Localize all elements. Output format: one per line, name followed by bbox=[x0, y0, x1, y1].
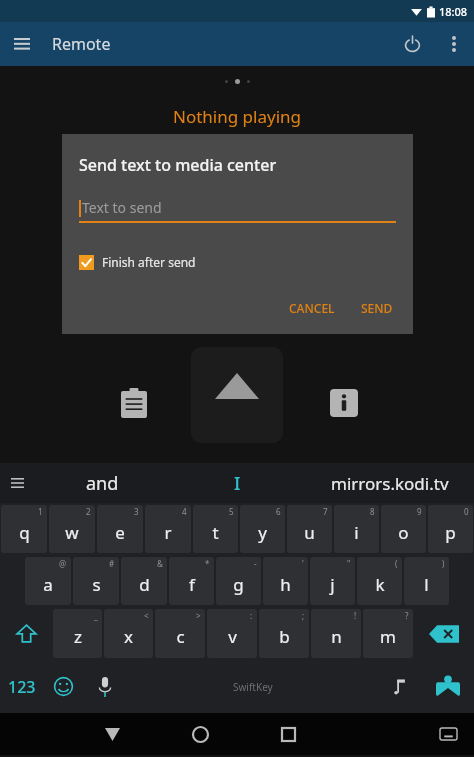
button[interactable]: Power bbox=[390, 22, 434, 66]
staticText: a bbox=[43, 573, 53, 596]
button[interactable]: I bbox=[170, 463, 305, 503]
button[interactable]: Switch keyboard bbox=[426, 713, 470, 755]
staticText: 0 bbox=[464, 506, 469, 517]
staticText: 2 bbox=[86, 506, 91, 517]
staticText: * bbox=[205, 558, 210, 569]
staticText: ) bbox=[442, 558, 445, 569]
button[interactable]: Keyboard settings bbox=[0, 463, 34, 503]
staticText: : bbox=[250, 610, 253, 621]
button[interactable]: More options bbox=[434, 24, 474, 64]
button[interactable]: Up bbox=[191, 347, 283, 443]
button[interactable]: SEND bbox=[351, 294, 403, 322]
staticText: Finish after send bbox=[102, 254, 196, 270]
button[interactable]: ' bbox=[263, 557, 308, 605]
staticText: and bbox=[86, 471, 119, 496]
button[interactable]: Playlist bbox=[108, 377, 160, 429]
staticText: 5 bbox=[229, 506, 234, 517]
staticText: 123 bbox=[8, 676, 36, 698]
button[interactable]: - bbox=[216, 557, 261, 605]
button[interactable]: * bbox=[169, 557, 214, 605]
button[interactable]: 0 bbox=[428, 505, 473, 553]
button[interactable]: < bbox=[104, 609, 153, 658]
button[interactable]: 1 bbox=[1, 505, 47, 553]
staticText: Send text to media center bbox=[79, 154, 277, 176]
button[interactable]: ! bbox=[311, 609, 361, 658]
button[interactable]: 4 bbox=[145, 505, 191, 553]
button[interactable]: ( bbox=[357, 557, 402, 605]
button[interactable]: and bbox=[34, 463, 170, 503]
button[interactable]: Backspace bbox=[414, 607, 474, 660]
staticText: Nothing playing bbox=[173, 105, 302, 128]
staticText: 7 bbox=[323, 506, 328, 517]
button[interactable]: Finish after send bbox=[79, 254, 196, 270]
button[interactable]: 6 bbox=[240, 505, 285, 553]
staticText: Remote bbox=[52, 33, 111, 55]
staticText: SEND bbox=[361, 300, 393, 316]
staticText: l bbox=[424, 573, 429, 596]
staticText: t bbox=[212, 521, 219, 544]
staticText: v bbox=[228, 625, 237, 648]
staticText: @ bbox=[59, 558, 67, 569]
button[interactable]: # bbox=[73, 557, 119, 605]
staticText: # bbox=[109, 558, 115, 569]
button[interactable]: > bbox=[155, 609, 205, 658]
button[interactable]: Emoji bbox=[44, 660, 82, 713]
staticText: b bbox=[279, 625, 290, 648]
button[interactable]: ) bbox=[404, 557, 449, 605]
staticText: z bbox=[74, 625, 82, 648]
button[interactable]: CANCEL bbox=[279, 294, 345, 322]
button[interactable]: 9 bbox=[381, 505, 426, 553]
button[interactable]: Voice input bbox=[82, 660, 128, 713]
button[interactable]: Space bbox=[128, 660, 378, 713]
staticText: y bbox=[258, 521, 267, 544]
staticText: m bbox=[380, 625, 396, 648]
button[interactable]: _ bbox=[53, 609, 102, 658]
staticText: - bbox=[254, 558, 257, 569]
button[interactable]: 2 bbox=[49, 505, 95, 553]
staticText: Text to send bbox=[82, 198, 162, 217]
staticText: ( bbox=[395, 558, 398, 569]
staticText: o bbox=[398, 521, 409, 544]
staticText: mirrors.kodi.tv bbox=[331, 472, 449, 495]
button[interactable]: Open navigation drawer bbox=[0, 22, 44, 66]
button[interactable]: mirrors.kodi.tv bbox=[305, 463, 474, 503]
staticText: " bbox=[347, 558, 351, 569]
staticText: > bbox=[196, 610, 201, 621]
staticText: r bbox=[164, 521, 172, 544]
button[interactable]: Send bbox=[422, 660, 474, 713]
button[interactable]: Back bbox=[89, 713, 135, 755]
button[interactable]: : bbox=[207, 609, 257, 658]
staticText: _ bbox=[94, 610, 98, 621]
button[interactable]: Shift bbox=[0, 607, 52, 660]
button[interactable]: 123 bbox=[0, 660, 44, 713]
staticText: ; bbox=[302, 610, 305, 621]
staticText: f bbox=[189, 573, 195, 596]
staticText: u bbox=[304, 521, 315, 544]
button[interactable]: Home bbox=[177, 713, 223, 755]
staticText: ' bbox=[302, 558, 304, 569]
staticText: i bbox=[354, 521, 359, 544]
staticText: 4 bbox=[182, 506, 187, 517]
staticText: p bbox=[445, 521, 456, 544]
staticText: q bbox=[19, 521, 30, 544]
staticText: ? bbox=[405, 610, 409, 621]
button[interactable]: Info bbox=[318, 377, 370, 429]
staticText: CANCEL bbox=[289, 300, 335, 316]
staticText: 8 bbox=[370, 506, 375, 517]
button[interactable]: 8 bbox=[334, 505, 379, 553]
staticText: k bbox=[375, 573, 385, 596]
button[interactable]: @ bbox=[25, 557, 71, 605]
staticText: h bbox=[280, 573, 291, 596]
button[interactable]: ; bbox=[259, 609, 309, 658]
button[interactable]: Recent apps bbox=[265, 713, 311, 755]
button[interactable]: Symbols bbox=[378, 660, 422, 713]
button[interactable]: & bbox=[121, 557, 167, 605]
staticText: ! bbox=[354, 610, 357, 621]
button[interactable]: 5 bbox=[193, 505, 238, 553]
button[interactable]: " bbox=[310, 557, 355, 605]
staticText: j bbox=[330, 573, 335, 596]
button[interactable]: 7 bbox=[287, 505, 332, 553]
button[interactable]: 3 bbox=[97, 505, 143, 553]
button[interactable]: ? bbox=[363, 609, 413, 658]
staticText: I bbox=[234, 471, 241, 496]
